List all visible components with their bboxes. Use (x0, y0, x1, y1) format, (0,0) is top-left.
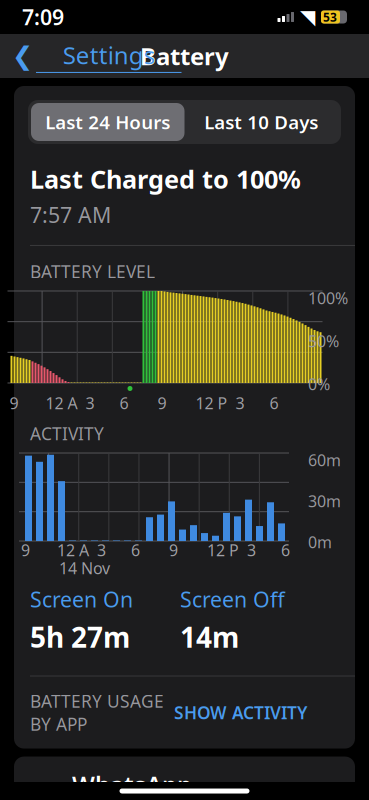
staticText: Screen Off (180, 585, 285, 613)
staticText: 9 (169, 539, 178, 561)
staticText: 60m (308, 449, 341, 471)
staticText: 100% (308, 287, 348, 309)
staticText: WhatsApp (72, 769, 192, 800)
button[interactable]: Screen Off (180, 585, 285, 613)
staticText: Last Charged to 100% (30, 162, 301, 196)
staticText: Screen On (30, 585, 133, 613)
staticText: 7:09 (22, 3, 64, 31)
button[interactable]: Last 10 Days (184, 103, 338, 141)
staticText: 6 (119, 392, 128, 414)
staticText: Settings (63, 39, 155, 71)
staticText: 6 (131, 539, 140, 561)
staticText: Last 10 Days (204, 110, 318, 134)
staticText: ACTIVITY (30, 422, 104, 445)
staticText: 12 P (207, 539, 239, 561)
staticText: 0% (308, 373, 330, 395)
staticText: 0m (308, 531, 332, 553)
button[interactable]: ❮ (6, 35, 187, 77)
staticText: BATTERY USAGE BY APP (30, 689, 164, 735)
staticText: 3 (97, 539, 106, 561)
button[interactable]: Screen On (30, 585, 133, 613)
staticText: 53 (323, 9, 337, 25)
staticText: 12 A (45, 392, 77, 414)
button[interactable]: SHOW ACTIVITY (174, 701, 307, 724)
staticText: 12 P (195, 392, 227, 414)
staticText: SHOW ACTIVITY (174, 701, 307, 724)
staticText: 30m (308, 490, 341, 512)
staticText: 3 (85, 392, 94, 414)
staticText: 9 (9, 392, 18, 414)
staticText: 5h 27m (30, 618, 130, 655)
staticText: 6 (281, 539, 290, 561)
staticText: 9 (157, 392, 166, 414)
staticText: ◥ (300, 6, 315, 28)
staticText: 3 (247, 539, 256, 561)
staticText: Battery (140, 40, 229, 72)
staticText: 3 (235, 392, 244, 414)
staticText: 50% (308, 330, 339, 352)
staticText: BATTERY LEVEL (30, 260, 155, 283)
staticText: 12 A (57, 539, 89, 561)
staticText: 14 Nov (59, 557, 110, 579)
staticText: 6 (269, 392, 278, 414)
staticText: 9 (21, 539, 30, 561)
staticText: Last 24 Hours (45, 110, 170, 134)
staticText: ❮ (12, 42, 33, 70)
button[interactable]: Last 24 Hours (31, 103, 184, 141)
button[interactable]: ✆ (14, 757, 355, 800)
staticText: 14m (180, 618, 239, 655)
staticText: 7:57 AM (30, 201, 111, 229)
